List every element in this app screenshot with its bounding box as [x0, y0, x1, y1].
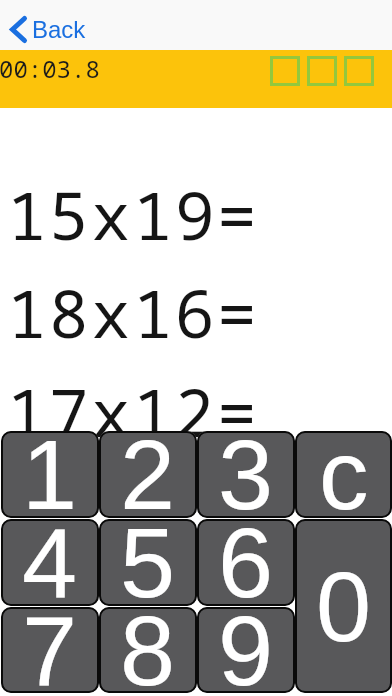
- staticText: Back: [32, 16, 86, 43]
- staticText: 3: [218, 431, 274, 518]
- button[interactable]: 7: [1, 607, 99, 693]
- staticText: 18x16=: [7, 267, 259, 357]
- staticText: 15x19=: [7, 169, 259, 259]
- button[interactable]: Back: [4, 8, 90, 46]
- button[interactable]: c: [295, 431, 392, 518]
- staticText: 17x12=: [7, 366, 259, 456]
- staticText: 4: [22, 519, 78, 606]
- staticText: 8: [120, 607, 176, 693]
- button[interactable]: 1: [1, 431, 99, 518]
- button[interactable]: 8: [99, 607, 197, 693]
- staticText: 1: [22, 431, 78, 518]
- staticText: 5: [120, 519, 176, 606]
- button[interactable]: 9: [197, 607, 295, 693]
- staticText: 2: [120, 431, 176, 518]
- staticText: c: [319, 431, 369, 518]
- button[interactable]: 4: [1, 519, 99, 606]
- staticText: 00:03.8: [0, 52, 100, 85]
- button[interactable]: 3: [197, 431, 295, 518]
- staticText: 6: [218, 519, 274, 606]
- staticText: 9: [218, 607, 274, 693]
- staticText: 7: [22, 607, 78, 693]
- button[interactable]: 2: [99, 431, 197, 518]
- button[interactable]: 0: [295, 519, 392, 693]
- staticText: 0: [316, 551, 372, 662]
- button[interactable]: 5: [99, 519, 197, 606]
- button[interactable]: 6: [197, 519, 295, 606]
